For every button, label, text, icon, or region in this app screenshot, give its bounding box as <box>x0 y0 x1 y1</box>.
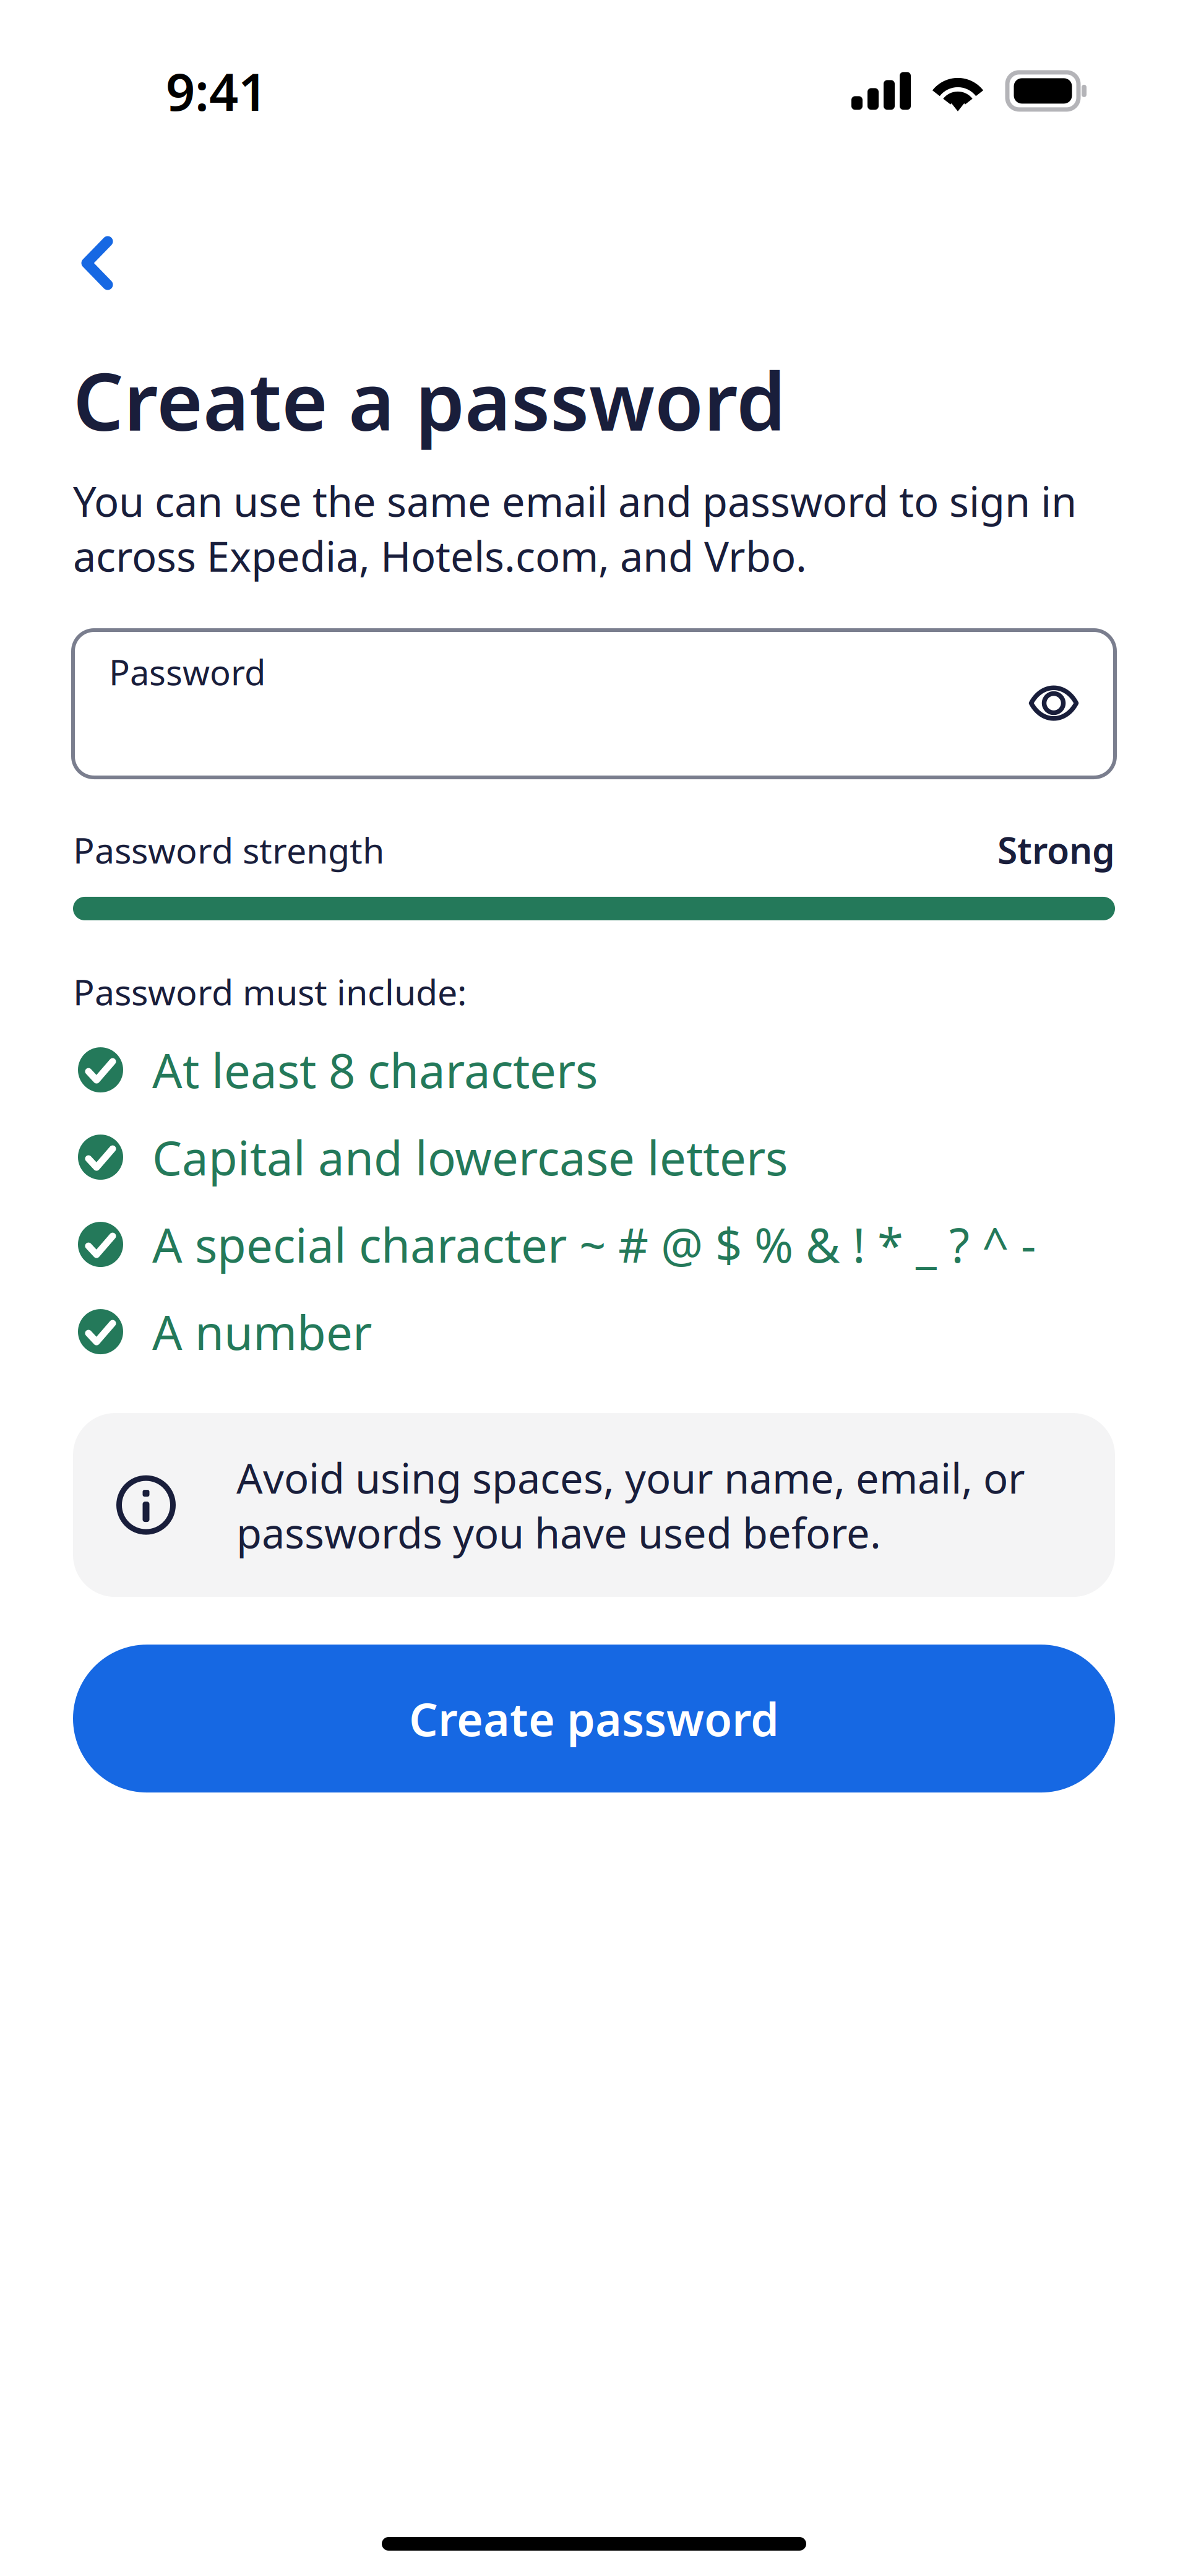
staticText: A number <box>152 1300 372 1363</box>
staticText: You can use the same email and password … <box>73 473 1077 583</box>
staticText: Create a password <box>73 347 786 452</box>
staticText: 9:41 <box>166 57 267 125</box>
staticText: Strong <box>997 826 1115 874</box>
staticText: Avoid using spaces, your name, email, or… <box>236 1450 1025 1560</box>
staticText: Capital and lowercase letters <box>152 1126 788 1188</box>
button[interactable]: Create password <box>73 1645 1115 1792</box>
staticText: Create password <box>409 1688 779 1749</box>
staticText: Password strength <box>73 826 384 873</box>
button[interactable]: Back <box>59 212 146 314</box>
staticText: Password must include: <box>73 968 467 1015</box>
button[interactable]: Show password <box>1010 630 1115 733</box>
staticText: A special character ~ # @ $ % & ! * _ ? … <box>152 1213 1036 1276</box>
staticText: At least 8 characters <box>152 1039 598 1101</box>
staticText: Password <box>109 649 265 695</box>
